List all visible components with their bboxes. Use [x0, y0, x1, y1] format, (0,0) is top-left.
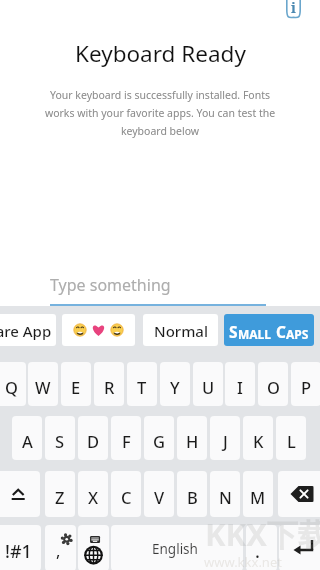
staticText: Share App [0, 321, 52, 341]
staticText: Type something [50, 274, 171, 296]
staticText: O [267, 376, 280, 398]
staticText: U [202, 376, 215, 398]
staticText: K [253, 430, 264, 452]
button[interactable]: H [177, 416, 207, 460]
staticText: Y [170, 376, 180, 398]
staticText: C [121, 486, 132, 508]
staticText: T [137, 376, 147, 398]
staticText: i [291, 0, 296, 17]
button[interactable]: Share App [0, 314, 56, 346]
staticText: M [250, 486, 266, 508]
staticText: MALL [238, 326, 272, 342]
button[interactable]: C [111, 471, 141, 517]
button[interactable]: S [45, 416, 75, 460]
staticText: . [255, 539, 260, 564]
staticText: www.kkx.net [204, 553, 282, 570]
button[interactable]: Shift [0, 471, 40, 517]
button[interactable]: N [210, 471, 240, 517]
staticText: I [237, 376, 243, 398]
button[interactable]: Change language [78, 525, 109, 570]
staticText: Keyboard Ready [75, 38, 246, 69]
staticText: KKX下载 [205, 513, 320, 555]
button[interactable]: S [224, 314, 314, 346]
staticText: B [187, 486, 198, 508]
button[interactable]: D [78, 416, 108, 460]
button[interactable]: P [291, 362, 320, 406]
button[interactable]: L [276, 416, 306, 460]
button[interactable]: K [243, 416, 273, 460]
button[interactable]: V [144, 471, 174, 517]
button[interactable]: T [127, 362, 157, 406]
staticText: N [219, 486, 232, 508]
button[interactable]: J [210, 416, 240, 460]
button[interactable]: !#1 [0, 525, 41, 570]
button[interactable]: O [258, 362, 288, 406]
staticText: C [276, 321, 286, 342]
button[interactable]: . [246, 525, 277, 570]
button[interactable]: E [61, 362, 91, 406]
staticText: S [55, 430, 65, 452]
staticText: H [186, 430, 199, 452]
button[interactable]: U [193, 362, 223, 406]
button[interactable]: B [177, 471, 207, 517]
button[interactable]: M [243, 471, 273, 517]
button[interactable]: I [225, 362, 255, 406]
staticText: G [153, 430, 165, 452]
button[interactable]: English [111, 525, 243, 570]
staticText: D [87, 430, 100, 452]
staticText: , [56, 540, 61, 562]
button[interactable]: G [144, 416, 174, 460]
button[interactable]: X [78, 471, 108, 517]
staticText: R [104, 376, 115, 398]
staticText: J [223, 430, 228, 452]
staticText: !#1 [5, 539, 32, 564]
button[interactable]: R [94, 362, 124, 406]
button[interactable]: F [111, 416, 141, 460]
staticText: A [22, 430, 33, 452]
staticText: L [287, 430, 296, 452]
staticText: P [301, 376, 312, 398]
button[interactable]: Z [45, 471, 75, 517]
button[interactable]: Info [281, 0, 307, 24]
staticText: E [71, 376, 81, 398]
staticText: V [154, 486, 165, 508]
staticText: Z [55, 486, 65, 508]
staticText: Normal [154, 321, 208, 341]
staticText: APS [286, 326, 309, 342]
staticText: English [152, 540, 198, 558]
staticText: Q [5, 376, 18, 398]
staticText: X [88, 486, 99, 508]
staticText: S [229, 321, 238, 342]
button[interactable]: Emoji [62, 314, 135, 346]
button[interactable]: Y [160, 362, 190, 406]
button[interactable]: Normal [143, 314, 218, 346]
button[interactable]: Q [0, 362, 26, 406]
button[interactable]: Enter [279, 525, 320, 570]
staticText: W [35, 376, 51, 398]
button[interactable]: W [28, 362, 58, 406]
button[interactable]: Backspace [278, 471, 320, 517]
button[interactable]: Comma and settings [45, 525, 76, 570]
button[interactable]: A [12, 416, 42, 460]
staticText: Your keyboard is successfully installed.… [38, 88, 282, 139]
staticText: F [122, 430, 131, 452]
